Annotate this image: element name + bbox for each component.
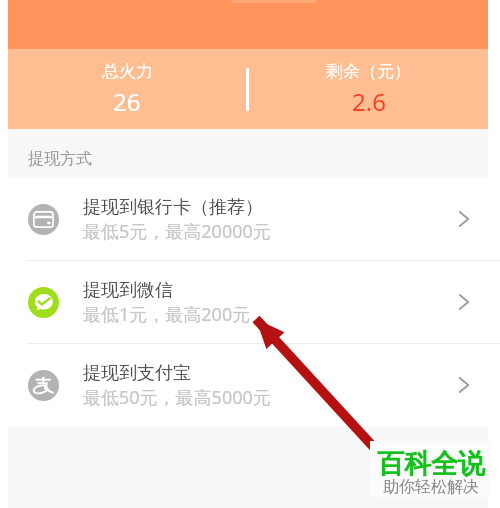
other: More [449, 204, 479, 234]
button[interactable]: 提现到支付宝 [8, 344, 488, 426]
button[interactable]: 总火力 [8, 49, 246, 129]
staticText: 百科全说 [377, 447, 485, 481]
other: More [449, 287, 479, 317]
staticText: 最低5元，最高20000元 [83, 219, 271, 244]
button[interactable]: 提现到微信 [8, 261, 488, 343]
button[interactable]: 剩余（元） [249, 49, 488, 129]
staticText: 助你轻松解决 [383, 477, 479, 497]
staticText: 提现方式 [28, 149, 92, 169]
staticText: 26 [113, 85, 141, 118]
staticText: 提现到银行卡（推荐） [83, 196, 263, 219]
button[interactable]: 提现到银行卡（推荐） [8, 178, 488, 260]
staticText: 最低50元，最高5000元 [83, 385, 271, 410]
staticText: 剩余（元） [326, 61, 411, 82]
staticText: 2.6 [352, 85, 386, 118]
staticText: 总火力 [102, 61, 153, 82]
staticText: 提现到支付宝 [83, 362, 191, 385]
staticText: 最低1元，最高200元 [83, 302, 251, 327]
other: More [449, 370, 479, 400]
staticText: 提现到微信 [83, 279, 173, 302]
